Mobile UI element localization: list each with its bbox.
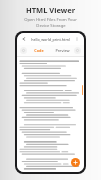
button[interactable]: Preview xyxy=(50,45,74,56)
button[interactable]: Undo xyxy=(20,47,27,54)
staticText: HTML Viewer xyxy=(26,5,75,15)
staticText: Device Storage xyxy=(36,23,66,29)
button[interactable]: Back xyxy=(20,35,28,43)
staticText: hello_world_print.html xyxy=(31,37,70,42)
button[interactable]: Open file xyxy=(71,158,80,167)
button[interactable]: Code xyxy=(27,45,50,56)
staticText: Code xyxy=(34,48,44,53)
button[interactable]: Redo xyxy=(74,47,81,54)
staticText: Preview xyxy=(55,48,70,53)
staticText: Open Html Files From Your xyxy=(24,17,77,23)
button[interactable]: More options xyxy=(73,35,81,43)
